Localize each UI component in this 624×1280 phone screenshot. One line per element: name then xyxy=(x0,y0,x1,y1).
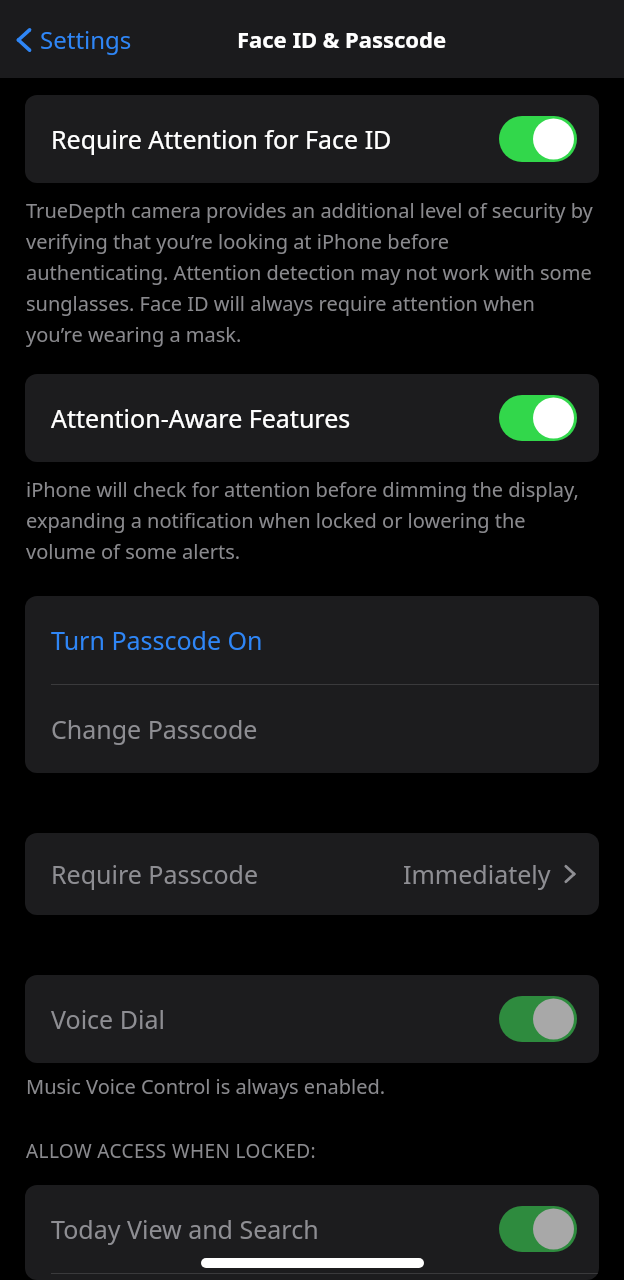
staticText: ALLOW ACCESS WHEN LOCKED: xyxy=(26,1138,317,1164)
other: Toggle xyxy=(499,116,577,162)
staticText: Face ID & Passcode xyxy=(237,24,447,54)
button[interactable]: Back to Settings xyxy=(10,17,140,62)
staticText: Today View and Search xyxy=(51,1212,319,1246)
staticText: Require Attention for Face ID xyxy=(51,122,392,156)
staticText: Turn Passcode On xyxy=(51,623,263,657)
button[interactable]: Require Passcode xyxy=(25,833,599,915)
staticText: Attention-Aware Features xyxy=(51,401,351,435)
button[interactable]: Voice Dial xyxy=(25,975,599,1063)
other: Toggle xyxy=(499,996,577,1042)
button[interactable]: Today View and Search xyxy=(25,1185,599,1273)
button[interactable]: Require Attention for Face ID xyxy=(25,95,599,183)
staticText: Voice Dial xyxy=(51,1002,165,1036)
staticText: Change Passcode xyxy=(51,712,258,746)
staticText: TrueDepth camera provides an additional … xyxy=(26,197,594,348)
other: Toggle xyxy=(499,395,577,441)
button[interactable]: Attention-Aware Features xyxy=(25,374,599,462)
staticText: Require Passcode xyxy=(51,857,259,891)
other: Toggle xyxy=(499,1206,577,1252)
staticText: Music Voice Control is always enabled. xyxy=(26,1073,386,1100)
staticText: Immediately xyxy=(403,857,551,891)
staticText: Settings xyxy=(40,23,132,56)
staticText: iPhone will check for attention before d… xyxy=(26,476,594,565)
button[interactable]: Change Passcode xyxy=(25,685,599,773)
button[interactable]: Turn Passcode On xyxy=(25,596,599,684)
